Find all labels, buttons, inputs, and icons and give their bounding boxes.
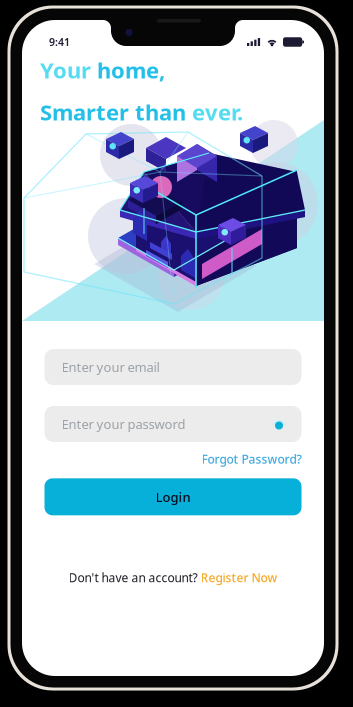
staticText: Don't have an account? xyxy=(68,569,200,586)
staticText: Enter your password xyxy=(61,415,185,433)
staticText: home, xyxy=(97,55,165,85)
staticText: Your xyxy=(40,55,97,85)
staticText: Register Now xyxy=(200,569,277,586)
staticText: Smarter than xyxy=(40,97,192,127)
button[interactable]: Enter your email xyxy=(44,349,301,385)
staticText: 9:41 xyxy=(49,35,70,49)
staticText: Login xyxy=(155,488,190,506)
staticText: Forgot Password? xyxy=(201,451,301,467)
button[interactable]: Forgot Password? xyxy=(201,451,301,467)
button[interactable]: Enter your password xyxy=(44,406,301,442)
staticText: Enter your email xyxy=(61,358,159,376)
button[interactable]: Register Now xyxy=(200,569,277,586)
button[interactable]: Login xyxy=(44,478,301,515)
staticText: ever. xyxy=(192,97,243,127)
